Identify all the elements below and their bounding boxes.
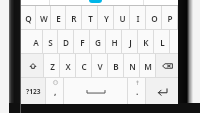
- staticText: W: [40, 13, 48, 24]
- staticText: B: [113, 61, 119, 72]
- button[interactable]: Q: [21, 6, 36, 30]
- button[interactable]: A: [28, 30, 43, 54]
- button[interactable]: B: [108, 54, 124, 78]
- button[interactable]: X: [60, 54, 76, 78]
- button[interactable]: .: [128, 78, 146, 104]
- button[interactable]: ,: [46, 78, 64, 104]
- button[interactable]: Z: [44, 54, 60, 78]
- staticText: ,: [54, 86, 57, 98]
- staticText: G: [95, 37, 101, 48]
- button[interactable]: S: [43, 30, 58, 54]
- button[interactable]: D: [58, 30, 74, 54]
- button[interactable]: Space: [64, 78, 128, 104]
- button[interactable]: J: [122, 30, 138, 54]
- staticText: A: [33, 37, 39, 48]
- staticText: D: [63, 37, 69, 48]
- button[interactable]: Delete: [156, 54, 178, 78]
- staticText: M: [144, 61, 152, 72]
- staticText: L: [160, 37, 165, 48]
- staticText: Y: [104, 13, 109, 24]
- staticText: C: [81, 61, 87, 72]
- button[interactable]: Y: [98, 6, 114, 30]
- staticText: P: [167, 13, 173, 24]
- button[interactable]: F: [74, 30, 90, 54]
- button[interactable]: I: [130, 6, 146, 30]
- button[interactable]: E: [51, 6, 66, 30]
- staticText: T: [88, 13, 93, 24]
- staticText: .: [136, 86, 139, 98]
- staticText: R: [71, 13, 77, 24]
- staticText: O: [151, 13, 158, 24]
- staticText: H: [111, 37, 118, 48]
- staticText: F: [80, 37, 85, 48]
- staticText: J: [129, 37, 132, 48]
- button[interactable]: Shift: [21, 54, 44, 78]
- staticText: V: [97, 61, 103, 72]
- staticText: I: [136, 13, 140, 24]
- staticText: E: [56, 13, 61, 24]
- button[interactable]: U: [114, 6, 130, 30]
- button[interactable]: H: [106, 30, 122, 54]
- button[interactable]: ?123: [21, 78, 46, 104]
- staticText: S: [48, 37, 53, 48]
- button[interactable]: P: [162, 6, 178, 30]
- button[interactable]: O: [146, 6, 162, 30]
- staticText: Z: [50, 61, 55, 72]
- button[interactable]: R: [66, 6, 82, 30]
- button[interactable]: T: [82, 6, 98, 30]
- staticText: X: [65, 61, 71, 72]
- staticText: Q: [25, 13, 32, 24]
- staticText: U: [119, 13, 126, 24]
- button[interactable]: L: [154, 30, 170, 54]
- button[interactable]: M: [140, 54, 156, 78]
- button[interactable]: N: [124, 54, 140, 78]
- button[interactable]: K: [138, 30, 154, 54]
- button[interactable]: W: [36, 6, 51, 30]
- staticText: ?123: [26, 87, 41, 96]
- button[interactable]: V: [92, 54, 108, 78]
- button[interactable]: Enter: [146, 78, 178, 104]
- staticText: N: [129, 61, 136, 72]
- staticText: K: [143, 37, 149, 48]
- button[interactable]: C: [76, 54, 92, 78]
- button[interactable]: G: [90, 30, 106, 54]
